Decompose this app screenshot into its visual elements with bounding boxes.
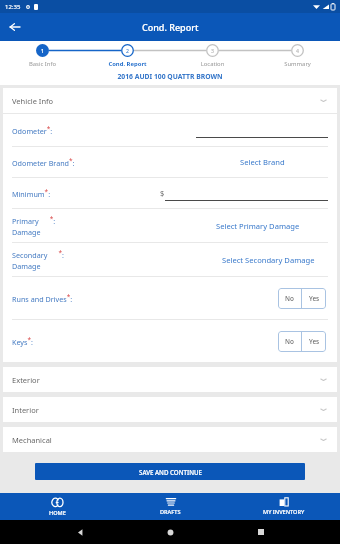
button[interactable]: Vehicle Info — [3, 88, 337, 113]
staticText: Yes — [309, 337, 320, 346]
staticText: Runs and Drives*: — [12, 292, 73, 305]
button[interactable]: HOME — [0, 493, 114, 520]
button[interactable]: Yes — [302, 288, 326, 309]
button[interactable]: No — [278, 288, 301, 309]
button[interactable]: Exterior — [3, 367, 337, 392]
staticText: Keys*: — [12, 335, 33, 348]
staticText: Primary *: — [12, 214, 56, 227]
staticText: Damage — [12, 261, 41, 271]
button[interactable] — [165, 186, 328, 201]
staticText: No — [285, 337, 294, 346]
other: Expand Vehicle Info — [319, 96, 328, 105]
staticText: No — [285, 294, 294, 303]
staticText: HOME — [49, 509, 66, 517]
staticText: $ — [160, 188, 165, 198]
staticText: Select Brand — [240, 157, 285, 167]
button[interactable]: Yes — [302, 331, 326, 352]
button[interactable]: No — [278, 331, 301, 352]
staticText: Basic Info — [0, 60, 85, 68]
staticText: Location — [170, 60, 255, 68]
staticText: Interior — [12, 405, 39, 415]
staticText: Damage — [12, 227, 41, 237]
staticText: Exterior — [12, 375, 40, 385]
button[interactable]: Home — [159, 521, 181, 543]
button[interactable]: Back — [5, 17, 25, 37]
staticText: 3 — [211, 47, 214, 54]
button[interactable] — [196, 122, 328, 138]
button[interactable]: Recents — [250, 521, 272, 543]
button[interactable]: Mechanical — [3, 427, 337, 452]
staticText: Odometer Brand*: — [12, 156, 75, 169]
staticText: 2 — [126, 47, 129, 54]
button[interactable]: DRAFTS — [114, 493, 227, 520]
button[interactable]: MY INVENTORY — [227, 493, 340, 520]
staticText: Select Primary Damage — [216, 221, 300, 231]
button[interactable]: 3 — [170, 44, 255, 68]
staticText: 12:35 — [5, 3, 21, 11]
staticText: Summary — [255, 60, 340, 68]
button[interactable]: 1 — [0, 44, 85, 68]
button[interactable]: Primary *: — [12, 209, 328, 242]
staticText: Cond. Report — [85, 60, 170, 68]
staticText: SAVE AND CONTINUE — [139, 468, 202, 476]
other: Expand Mechanical — [319, 435, 328, 444]
staticText: Vehicle Info — [12, 96, 54, 106]
button[interactable]: SAVE AND CONTINUE — [35, 463, 305, 480]
staticText: DRAFTS — [160, 508, 181, 516]
staticText: Yes — [309, 294, 320, 303]
staticText: Minimum*: — [12, 187, 51, 200]
staticText: Secondary *: — [12, 248, 65, 261]
button[interactable]: Interior — [3, 397, 337, 422]
staticText: Mechanical — [12, 435, 52, 445]
staticText: MY INVENTORY — [263, 508, 305, 516]
button[interactable]: Secondary *: — [12, 243, 328, 276]
staticText: Cond. Report — [142, 21, 199, 33]
staticText: 1 — [41, 47, 44, 54]
staticText: Odometer*: — [12, 124, 53, 137]
button[interactable]: 4 — [255, 44, 340, 68]
other: Expand Exterior — [319, 375, 328, 384]
button[interactable]: Odometer Brand*: — [12, 147, 328, 177]
other: Expand Interior — [319, 405, 328, 414]
button[interactable]: Back — [69, 521, 91, 543]
button[interactable]: 2 — [85, 44, 170, 68]
staticText: 2016 AUDI 100 QUATTR BROWN — [0, 72, 340, 81]
staticText: 4 — [296, 47, 299, 54]
staticText: Select Secondary Damage — [222, 255, 315, 265]
